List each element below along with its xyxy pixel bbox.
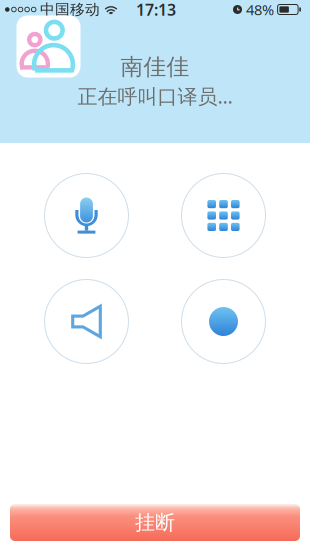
button[interactable]: Mute — [44, 173, 128, 257]
staticText: 中国移动 — [40, 0, 100, 18]
staticText: 南佳佳 — [120, 53, 189, 81]
button[interactable]: 挂断 — [10, 504, 300, 541]
button[interactable]: Keypad — [181, 173, 265, 257]
staticText: 挂断 — [135, 510, 175, 535]
staticText: 17:13 — [136, 0, 176, 20]
staticText: 正在呼叫口译员... — [77, 83, 232, 109]
button[interactable]: Record — [181, 279, 265, 363]
staticText: 48% — [246, 0, 274, 19]
button[interactable]: Speaker — [44, 279, 128, 363]
